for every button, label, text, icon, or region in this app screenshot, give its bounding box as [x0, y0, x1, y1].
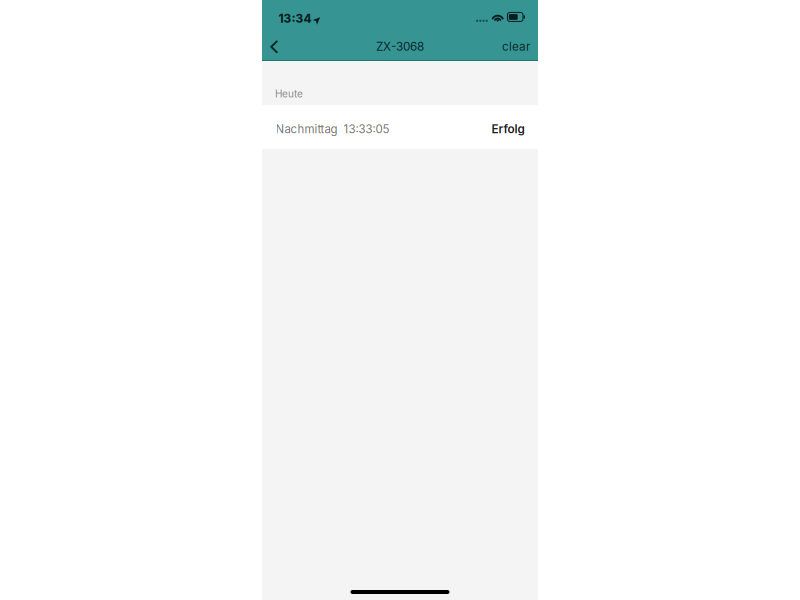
staticText: 13:34: [278, 11, 311, 26]
button[interactable]: Nachmittag 13:33:05: [262, 105, 538, 149]
staticText: Erfolg: [491, 122, 524, 136]
button[interactable]: Back: [263, 33, 285, 60]
staticText: clear: [502, 39, 530, 54]
staticText: Heute: [275, 88, 303, 100]
staticText: ZX-3068: [376, 39, 424, 54]
staticText: Nachmittag 13:33:05: [275, 122, 389, 136]
button[interactable]: clear: [502, 33, 530, 60]
